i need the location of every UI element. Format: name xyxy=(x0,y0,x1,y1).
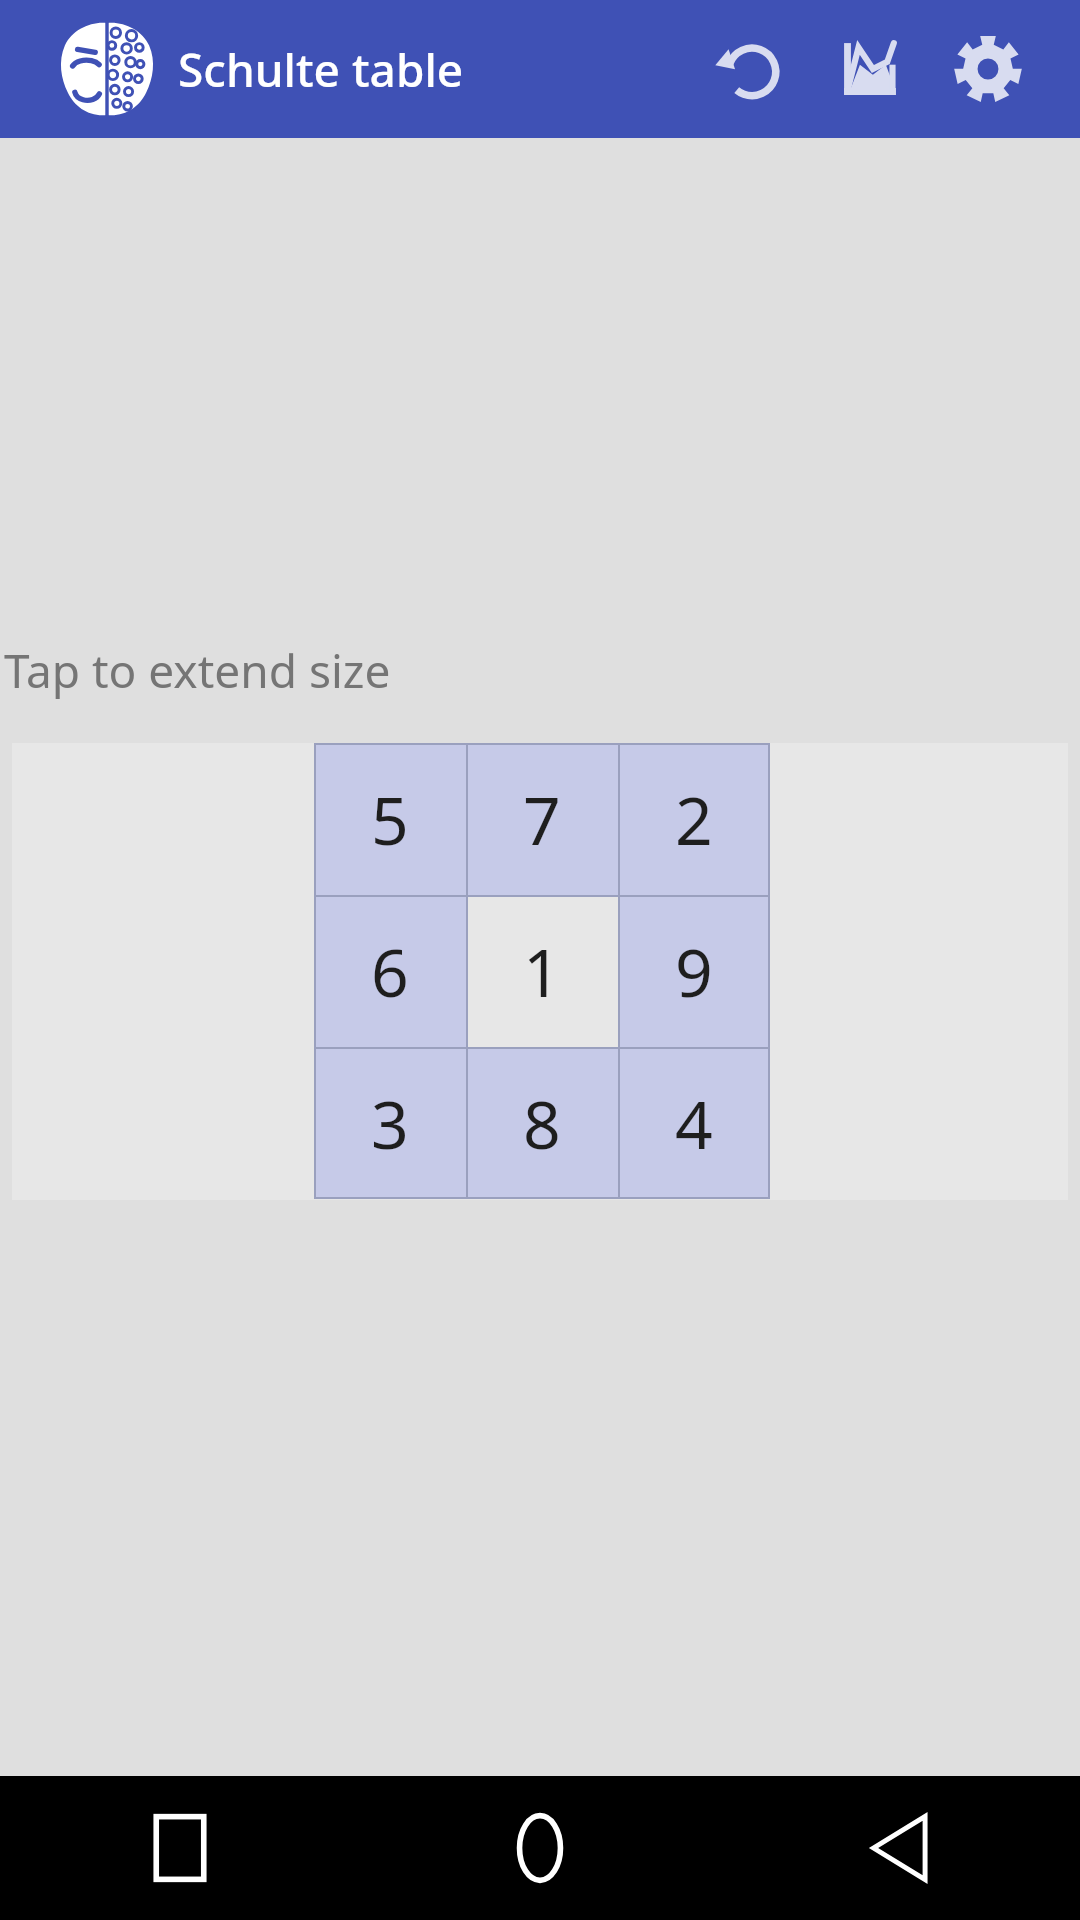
staticText: 8 xyxy=(523,1078,561,1168)
button[interactable]: 1 xyxy=(466,895,618,1047)
staticText: 1 xyxy=(523,926,561,1016)
button[interactable]: 7 xyxy=(466,743,618,895)
button[interactable]: Home xyxy=(360,1776,720,1920)
button[interactable]: Restart xyxy=(704,21,800,117)
button[interactable]: 4 xyxy=(618,1047,770,1199)
staticText: 7 xyxy=(523,774,561,864)
button[interactable]: 5 xyxy=(314,743,466,895)
staticText: 9 xyxy=(675,926,713,1016)
staticText: 6 xyxy=(371,926,409,1016)
button[interactable]: 8 xyxy=(466,1047,618,1199)
button[interactable]: Recent apps xyxy=(0,1776,360,1920)
staticText: 4 xyxy=(675,1078,713,1168)
button[interactable]: Back xyxy=(720,1776,1080,1920)
button[interactable]: Settings xyxy=(940,21,1036,117)
button[interactable]: Statistics xyxy=(822,21,918,117)
staticText: 2 xyxy=(675,774,713,864)
staticText: 5 xyxy=(371,774,409,864)
button[interactable]: 3 xyxy=(314,1047,466,1199)
staticText: 3 xyxy=(371,1078,409,1168)
button[interactable]: 6 xyxy=(314,895,466,1047)
staticText: Schulte table xyxy=(178,38,464,101)
button[interactable]: 9 xyxy=(618,895,770,1047)
button[interactable]: 2 xyxy=(618,743,770,895)
button[interactable]: Tap to extend size xyxy=(0,639,391,702)
